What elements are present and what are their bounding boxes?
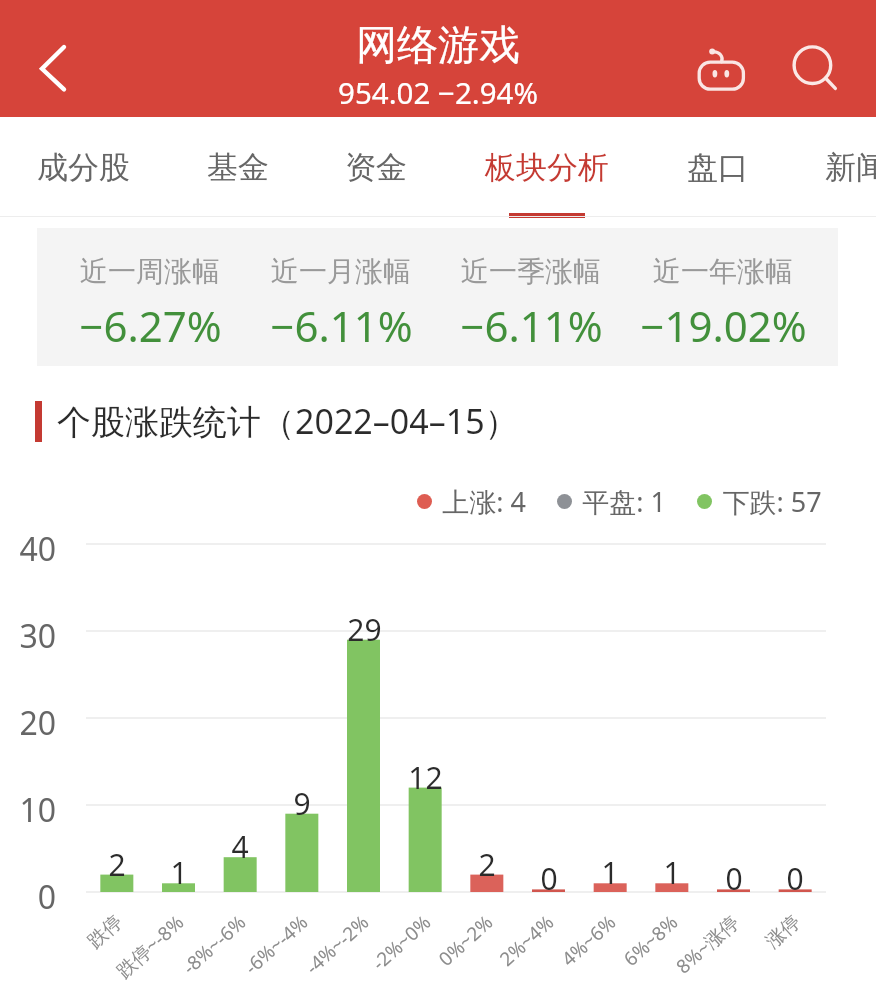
- staticText: 2: [108, 844, 126, 885]
- staticText: 8%~涨停: [670, 909, 744, 980]
- staticText: 1: [170, 852, 188, 893]
- staticText: 0%~2%: [432, 909, 498, 972]
- staticText: 上涨: 4: [442, 483, 526, 520]
- staticText: 网络游戏: [356, 20, 520, 72]
- staticText: 4: [231, 826, 249, 867]
- staticText: 个股涨跌统计（2022–04–15）: [57, 398, 519, 444]
- staticText: 20: [19, 701, 56, 745]
- staticText: 跌停: [83, 910, 127, 953]
- staticText: -6%~-4%: [238, 909, 313, 980]
- staticText: 下跌: 57: [722, 483, 822, 520]
- staticText: 成分股: [37, 148, 130, 187]
- button[interactable]: 资金: [311, 117, 441, 217]
- staticText: 2%~4%: [493, 909, 559, 972]
- staticText: 0: [540, 858, 558, 899]
- staticText: 近一年涨幅: [653, 254, 793, 289]
- staticText: −19.02%: [640, 297, 807, 354]
- staticText: 板块分析: [485, 148, 609, 187]
- button[interactable]: 新闻: [791, 117, 876, 217]
- staticText: 9: [293, 783, 311, 824]
- staticText: 近一周涨幅: [80, 254, 220, 289]
- staticText: 近一季涨幅: [461, 254, 601, 289]
- staticText: 1: [601, 852, 619, 893]
- staticText: 涨停: [761, 910, 805, 953]
- staticText: 0: [786, 858, 804, 899]
- staticText: 4%~6%: [555, 909, 621, 972]
- staticText: 30: [19, 614, 56, 658]
- button[interactable]: Search: [778, 31, 846, 99]
- staticText: 平盘: 1: [582, 483, 666, 520]
- button[interactable]: 板块分析: [465, 117, 629, 217]
- staticText: 2: [478, 844, 496, 885]
- staticText: -2%~0%: [366, 909, 436, 976]
- staticText: 6%~8%: [617, 909, 683, 972]
- button[interactable]: 基金: [173, 117, 303, 217]
- staticText: −6.11%: [460, 297, 603, 354]
- staticText: 资金: [345, 148, 407, 187]
- button[interactable]: 近一周涨幅: [37, 228, 838, 366]
- staticText: −6.27%: [79, 297, 222, 354]
- staticText: -4%~-2%: [299, 909, 374, 980]
- staticText: 0: [725, 858, 743, 899]
- button[interactable]: 盘口: [653, 117, 783, 217]
- staticText: 1: [663, 852, 681, 893]
- staticText: 0: [37, 875, 56, 919]
- staticText: 29: [347, 609, 382, 650]
- staticText: 40: [19, 527, 56, 571]
- staticText: 新闻: [825, 148, 876, 187]
- button[interactable]: 成分股: [8, 117, 158, 217]
- staticText: -8%~-6%: [176, 909, 251, 980]
- staticText: −6.11%: [270, 297, 413, 354]
- staticText: 12: [408, 757, 443, 798]
- staticText: 基金: [207, 148, 269, 187]
- staticText: 10: [19, 788, 56, 832]
- staticText: 盘口: [687, 148, 749, 187]
- button[interactable]: Back: [14, 36, 78, 100]
- staticText: 954.02 −2.94%: [338, 72, 538, 112]
- button[interactable]: AI assistant: [687, 33, 755, 101]
- staticText: 近一月涨幅: [271, 254, 411, 289]
- staticText: 跌停~-8%: [111, 909, 189, 984]
